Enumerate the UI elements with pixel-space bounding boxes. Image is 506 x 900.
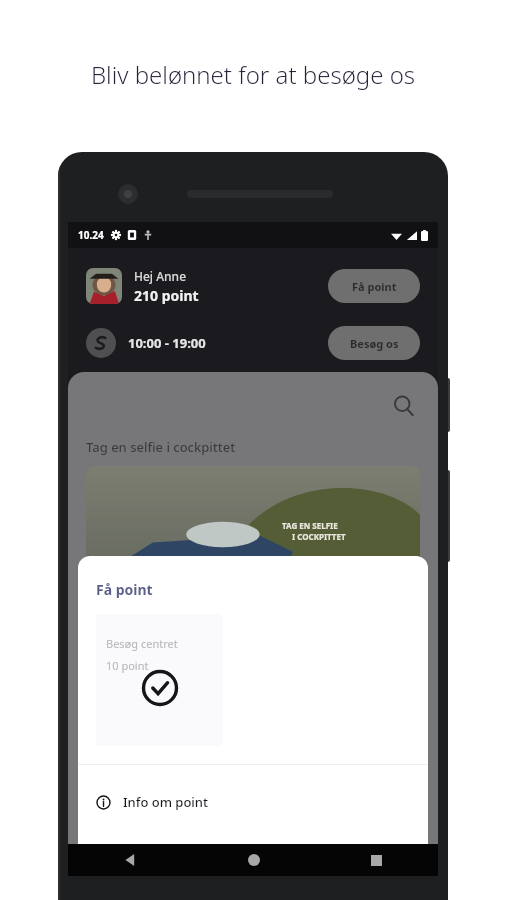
button[interactable]: TAG EN SELFIE (86, 466, 420, 582)
staticText: Besøg centret (106, 636, 178, 651)
staticText: 210 point (134, 286, 199, 305)
staticText: 10 point (106, 658, 149, 673)
button[interactable]: Få point (328, 269, 420, 303)
button[interactable]: Besøg os (328, 326, 420, 360)
staticText: 10.24 (78, 228, 104, 242)
button[interactable]: Oversigt (315, 844, 438, 876)
staticText: Hej Anne (134, 268, 187, 284)
staticText: Bliv belønnet for at besøge os (0, 58, 506, 91)
button[interactable]: Hjem (192, 844, 315, 876)
staticText: Få point (96, 580, 153, 599)
button[interactable]: Tilbage (68, 844, 192, 876)
button[interactable]: Info om point (78, 780, 428, 824)
button[interactable]: Besøg centret (96, 614, 223, 746)
staticText: I COCKPITTET (292, 531, 346, 542)
button[interactable]: Søg (382, 384, 426, 428)
staticText: Tag en selfie i cockpittet (86, 438, 236, 456)
staticText: Besøg os (350, 336, 399, 351)
staticText: Få point (352, 279, 397, 294)
staticText: TAG EN SELFIE (282, 520, 338, 531)
staticText: Info om point (123, 793, 208, 811)
staticText: 10:00 - 19:00 (128, 334, 206, 352)
